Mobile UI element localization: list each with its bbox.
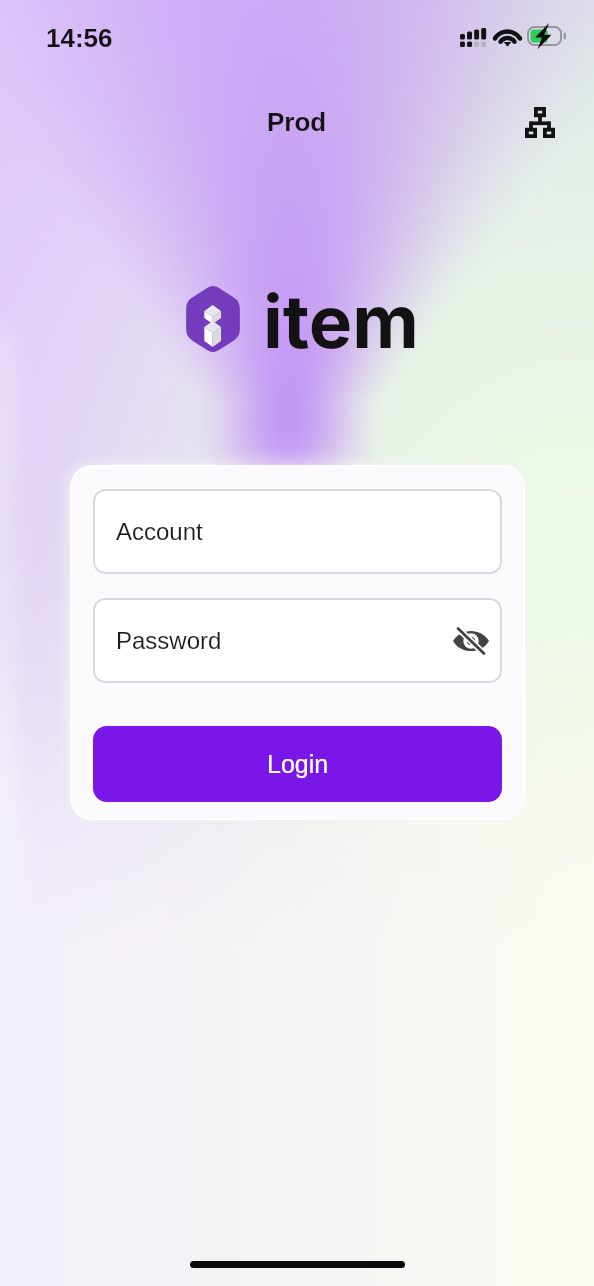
staticText: Login: [267, 750, 329, 778]
button[interactable]: Environment: [517, 99, 563, 145]
button[interactable]: Account: [93, 489, 502, 574]
staticText: Account: [116, 518, 203, 545]
staticText: Password: [116, 627, 222, 654]
button[interactable]: Prod: [253, 101, 341, 142]
staticText: item: [263, 277, 419, 365]
button[interactable]: Password: [93, 598, 502, 683]
staticText: 14:56: [46, 23, 113, 52]
button[interactable]: Login: [93, 726, 502, 802]
button[interactable]: Show password: [449, 619, 493, 663]
staticText: Prod: [267, 107, 327, 136]
